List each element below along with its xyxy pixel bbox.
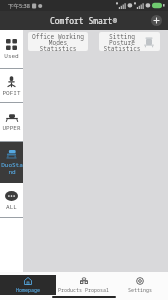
staticText: Settings (128, 287, 153, 294)
staticText: Products Proposal (58, 287, 110, 294)
button[interactable]: Add (151, 15, 162, 26)
button[interactable]: Sitting Posture Statistics (99, 32, 160, 51)
staticText: Comfort Smart® (50, 15, 118, 26)
button[interactable]: Used (0, 30, 23, 69)
button[interactable]: Products Proposal (56, 275, 112, 295)
staticText: Office Working Modes Statistics (32, 32, 84, 51)
staticText: Homepage (16, 287, 41, 294)
staticText: 下午5:38 (8, 2, 30, 10)
staticText: Sitting Posture Statistics (103, 32, 141, 51)
button[interactable]: UPPER (0, 103, 23, 142)
staticText: DuoSta nd (1, 161, 23, 176)
staticText: POFIT (2, 89, 21, 97)
button[interactable]: Settings (112, 275, 168, 295)
button[interactable]: ALL (0, 183, 23, 218)
button[interactable]: Office Working Modes Statistics (28, 32, 88, 51)
button[interactable]: Homepage (0, 275, 56, 295)
staticText: UPPER (2, 124, 21, 132)
staticText: Used (4, 52, 19, 60)
button[interactable]: POFIT (0, 69, 23, 103)
button[interactable]: DuoSta nd (0, 142, 23, 183)
staticText: ALL (6, 203, 17, 211)
